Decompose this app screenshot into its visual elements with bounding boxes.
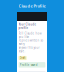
- staticText: Claude Profile: [18, 3, 45, 9]
- staticText: answer fits your style.: [19, 46, 40, 53]
- staticText: Your Claude profile: [19, 23, 37, 30]
- staticText: Profile saved: [20, 63, 38, 67]
- staticText: Draft: [20, 56, 26, 60]
- staticText: Tell Claude how you like: [19, 32, 42, 39]
- staticText: replies written so every: [19, 39, 44, 46]
